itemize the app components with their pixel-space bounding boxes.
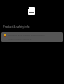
button[interactable]: Product and safety information [1, 32, 63, 42]
staticText: Learn more about it [8, 37, 32, 40]
staticText: Product and safety information [8, 33, 45, 36]
staticText: Product & safety info [3, 25, 30, 29]
